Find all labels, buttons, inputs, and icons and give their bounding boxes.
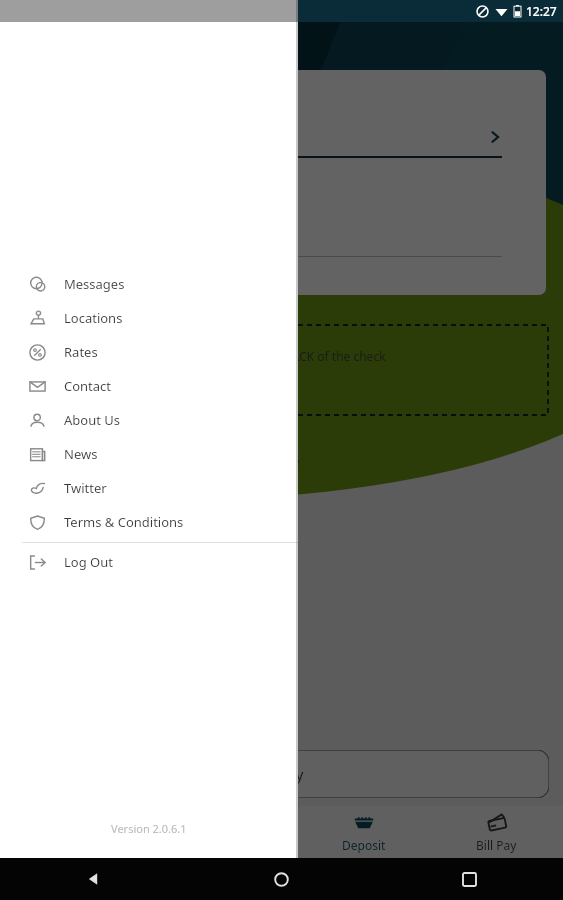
staticText: Take a photo of the BACK of the check bbox=[172, 348, 386, 364]
button[interactable]: Twitter bbox=[0, 471, 298, 505]
button[interactable]: Terms & Conditions bbox=[0, 505, 298, 539]
button[interactable]: Messages bbox=[0, 267, 298, 301]
staticText: Terms & Conditions bbox=[64, 513, 184, 531]
staticText: 12:27 bbox=[526, 3, 557, 19]
staticText: Twitter bbox=[64, 479, 107, 497]
staticText: About Us bbox=[64, 411, 121, 429]
staticText: Deposit bbox=[342, 837, 386, 853]
staticText: News bbox=[64, 445, 98, 463]
button[interactable]: Locations bbox=[0, 301, 298, 335]
button[interactable]: Contact bbox=[0, 369, 298, 403]
button[interactable]: About Us bbox=[0, 403, 298, 437]
staticText: History bbox=[253, 764, 304, 784]
staticText: Rates bbox=[64, 343, 98, 361]
button[interactable]: Log Out bbox=[0, 545, 298, 579]
staticText: I agree to the following terms and condi… bbox=[10, 453, 300, 469]
staticText: Log Out bbox=[64, 553, 113, 571]
button[interactable]: Rates bbox=[0, 335, 298, 369]
button[interactable]: News bbox=[0, 437, 298, 471]
staticText: Contact bbox=[64, 377, 112, 395]
button[interactable]: Deposit bbox=[298, 806, 430, 858]
button[interactable]: History bbox=[8, 750, 549, 798]
staticText: Bill Pay bbox=[476, 837, 517, 853]
staticText: For mobile deposit only" bbox=[10, 425, 151, 441]
staticText: Locations bbox=[64, 309, 123, 327]
staticText: Messages bbox=[64, 275, 125, 293]
staticText: Version 2.0.6.1 bbox=[111, 821, 187, 836]
button[interactable]: Bill Pay bbox=[430, 806, 563, 858]
